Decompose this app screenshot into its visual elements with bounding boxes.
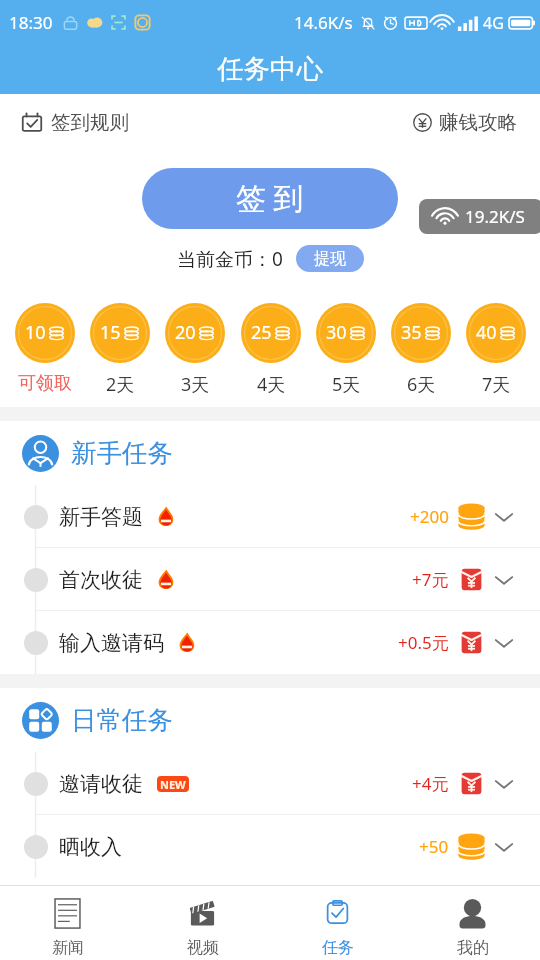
staticText: +200 (410, 505, 449, 528)
button[interactable]: 我的 (405, 896, 540, 960)
staticText: 我的 (457, 938, 489, 958)
button[interactable]: 20 (165, 303, 225, 397)
button[interactable]: 晒收入 (0, 815, 540, 878)
staticText: 10 (25, 320, 46, 345)
staticText: 签 到 (236, 177, 304, 218)
staticText: 30 (326, 320, 347, 345)
button[interactable]: 输入邀请码 (0, 611, 540, 674)
staticText: 首次收徒 (59, 567, 143, 593)
staticText: 当前金币：0 (177, 246, 283, 272)
staticText: 2天 (106, 372, 135, 397)
staticText: 7天 (482, 372, 511, 397)
staticText: 25 (251, 320, 272, 345)
button[interactable]: 签到规则 (0, 102, 139, 143)
button[interactable]: 新闻 (0, 896, 135, 960)
button[interactable]: 视频 (135, 896, 270, 960)
staticText: 赚钱攻略 (439, 110, 517, 135)
button[interactable]: 40 (466, 303, 526, 397)
staticText: 任务 (322, 938, 354, 958)
staticText: 3天 (181, 372, 210, 397)
staticText: 视频 (187, 938, 219, 958)
staticText: +50 (419, 835, 449, 858)
staticText: 14.6K/s (294, 11, 353, 34)
button[interactable]: Network speed (419, 199, 540, 234)
staticText: 新闻 (52, 938, 84, 958)
staticText: 4天 (257, 372, 286, 397)
staticText: 19.2K/S (465, 205, 525, 228)
staticText: +4元 (412, 772, 449, 795)
button[interactable]: 15 (90, 303, 150, 397)
staticText: 18:30 (9, 11, 53, 34)
staticText: 新手答题 (59, 504, 143, 530)
staticText: 晒收入 (59, 834, 122, 860)
staticText: 邀请收徒 (59, 771, 143, 797)
staticText: 35 (401, 320, 422, 345)
button[interactable]: 任务 (270, 896, 405, 960)
button[interactable]: 首次收徒 (0, 548, 540, 611)
staticText: 40 (476, 320, 497, 345)
staticText: 输入邀请码 (59, 630, 164, 656)
button[interactable]: 25 (241, 303, 301, 397)
button[interactable]: 30 (316, 303, 376, 397)
button[interactable]: 赚钱攻略 (403, 102, 540, 143)
button[interactable]: 提现 (296, 245, 364, 272)
button[interactable]: 新手答题 (0, 485, 540, 548)
staticText: +7元 (412, 568, 449, 591)
staticText: 4G (483, 12, 504, 34)
staticText: 提现 (314, 249, 346, 269)
staticText: 6天 (407, 372, 436, 397)
button[interactable]: 邀请收徒 (0, 752, 540, 815)
button[interactable]: 签 到 (142, 168, 398, 229)
staticText: NEW (160, 777, 186, 792)
staticText: 15 (100, 320, 121, 345)
staticText: 可领取 (18, 372, 72, 395)
button[interactable]: 35 (391, 303, 451, 397)
staticText: 签到规则 (51, 110, 129, 135)
staticText: 日常任务 (71, 704, 173, 736)
staticText: 5天 (332, 372, 361, 397)
button[interactable]: 10 (15, 303, 75, 395)
staticText: +0.5元 (398, 631, 449, 654)
staticText: 20 (175, 320, 196, 345)
staticText: 新手任务 (71, 437, 173, 469)
staticText: 任务中心 (217, 52, 323, 85)
